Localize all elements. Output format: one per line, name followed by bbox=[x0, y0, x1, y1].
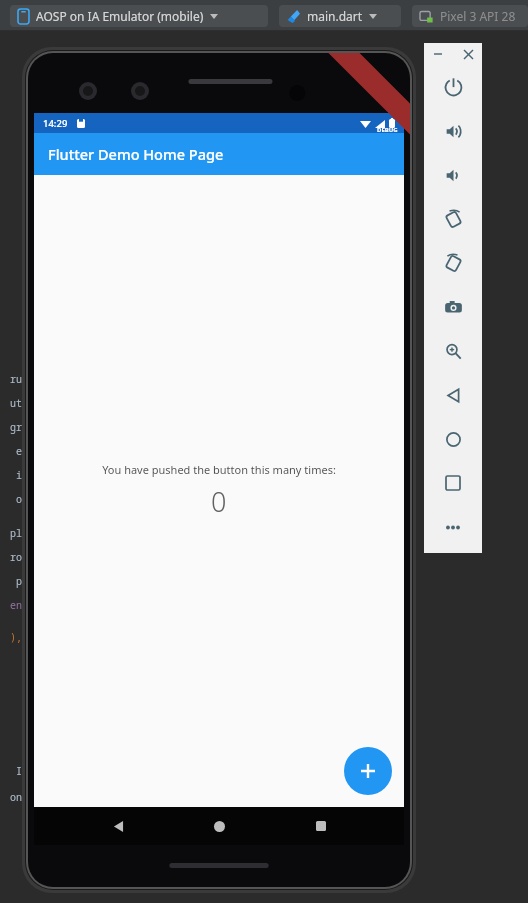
staticText: ro bbox=[10, 550, 22, 564]
button[interactable]: AOSP on IA Emulator (mobile) bbox=[10, 5, 268, 27]
button[interactable]: Volume up bbox=[424, 109, 482, 153]
button[interactable]: Rotate left bbox=[424, 197, 482, 241]
staticText: gr bbox=[10, 420, 22, 434]
staticText: 14:29 bbox=[43, 117, 68, 130]
button[interactable]: Back bbox=[100, 808, 136, 844]
staticText: main.dart bbox=[307, 8, 363, 24]
button[interactable]: Rotate right bbox=[424, 241, 482, 285]
button[interactable]: Home bbox=[424, 417, 482, 461]
staticText: I bbox=[16, 764, 22, 778]
button[interactable]: Volume down bbox=[424, 153, 482, 197]
staticText: en bbox=[10, 598, 22, 612]
button[interactable]: Screenshot bbox=[424, 285, 482, 329]
staticText: o bbox=[16, 492, 22, 506]
button[interactable]: main.dart bbox=[279, 5, 401, 27]
button[interactable]: Home bbox=[201, 808, 237, 844]
staticText: i bbox=[16, 468, 22, 482]
button[interactable]: Power bbox=[424, 65, 482, 109]
staticText: You have pushed the button this many tim… bbox=[102, 462, 336, 477]
staticText: Pixel 3 API 28 bbox=[440, 8, 516, 24]
staticText: ru bbox=[10, 372, 22, 386]
staticText: e bbox=[16, 444, 22, 458]
staticText: pl bbox=[10, 526, 22, 540]
staticText: DEBUG bbox=[377, 126, 398, 134]
button[interactable]: Increment bbox=[344, 747, 392, 795]
staticText: on bbox=[10, 790, 22, 804]
button[interactable]: More bbox=[424, 505, 482, 549]
button[interactable]: Overview bbox=[424, 461, 482, 505]
staticText: ut bbox=[10, 396, 22, 410]
staticText: 0 bbox=[211, 483, 227, 520]
button[interactable]: Back bbox=[424, 373, 482, 417]
button[interactable]: Pixel 3 API 28 bbox=[412, 5, 528, 27]
button[interactable]: Close bbox=[460, 46, 476, 62]
button[interactable]: Zoom bbox=[424, 329, 482, 373]
staticText: p bbox=[16, 574, 22, 588]
button[interactable]: Minimize bbox=[430, 46, 446, 62]
button[interactable]: Overview bbox=[303, 808, 339, 844]
staticText: AOSP on IA Emulator (mobile) bbox=[36, 8, 204, 24]
staticText: Flutter Demo Home Page bbox=[48, 144, 224, 164]
staticText: ), bbox=[10, 630, 22, 644]
